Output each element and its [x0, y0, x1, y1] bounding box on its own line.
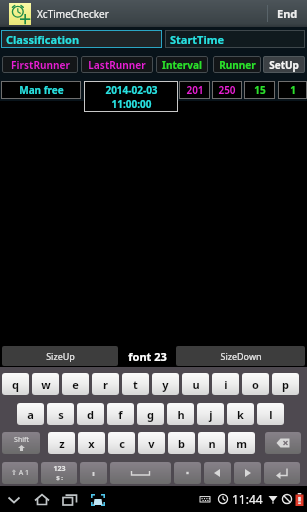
staticText: q: [12, 377, 19, 392]
staticText: Man free: [19, 83, 64, 97]
staticText: 1: [290, 83, 296, 97]
button[interactable]: Space: [110, 462, 171, 484]
staticText: $ :: [56, 474, 63, 482]
button[interactable]: d: [77, 403, 104, 425]
button[interactable]: Enter: [264, 462, 300, 484]
staticText: e: [72, 377, 79, 392]
button[interactable]: Back: [0, 486, 28, 512]
staticText: 15: [254, 83, 266, 97]
button[interactable]: StartTime: [165, 30, 305, 48]
button[interactable]: s: [47, 403, 74, 425]
staticText: t: [133, 377, 138, 392]
staticText: 250: [218, 83, 236, 97]
staticText: d: [87, 407, 94, 422]
staticText: x: [88, 436, 95, 451]
staticText: i: [224, 377, 228, 392]
button[interactable]: 2014-02-03 11:00:00: [84, 81, 178, 112]
button[interactable]: e: [62, 373, 89, 395]
staticText: c: [119, 436, 125, 451]
button[interactable]: Period: [174, 462, 201, 484]
button[interactable]: Switch input method: [84, 486, 112, 512]
button[interactable]: z: [48, 432, 75, 454]
button[interactable]: l: [257, 403, 284, 425]
button[interactable]: p: [272, 373, 299, 395]
staticText: SizeUp: [46, 350, 75, 362]
button[interactable]: Symbols: [2, 462, 38, 484]
staticText: p: [282, 377, 289, 392]
button[interactable]: Comma: [80, 462, 107, 484]
staticText: Interval: [162, 58, 202, 72]
staticText: w: [41, 377, 51, 392]
staticText: k: [237, 407, 244, 422]
button[interactable]: m: [228, 432, 255, 454]
staticText: LastRunner: [88, 58, 146, 72]
staticText: g: [147, 407, 154, 422]
button[interactable]: q: [2, 373, 29, 395]
button[interactable]: Home: [28, 486, 56, 512]
button[interactable]: k: [227, 403, 254, 425]
button[interactable]: y: [152, 373, 179, 395]
button[interactable]: 15: [244, 81, 275, 99]
staticText: End: [277, 6, 298, 21]
staticText: f: [118, 407, 123, 422]
button[interactable]: Numbers: [41, 462, 77, 484]
staticText: h: [177, 407, 185, 422]
button[interactable]: b: [168, 432, 195, 454]
button[interactable]: i: [212, 373, 239, 395]
staticText: r: [103, 377, 108, 392]
button[interactable]: SizeDown: [176, 346, 305, 366]
button[interactable]: 250: [212, 81, 242, 99]
button[interactable]: 1: [278, 81, 307, 99]
staticText: b: [178, 436, 185, 451]
button[interactable]: o: [242, 373, 269, 395]
button[interactable]: t: [122, 373, 149, 395]
button[interactable]: u: [182, 373, 209, 395]
staticText: FirstRunner: [11, 58, 70, 72]
button[interactable]: FirstRunner: [2, 56, 78, 73]
button[interactable]: LastRunner: [81, 56, 153, 73]
staticText: SetUp: [269, 58, 299, 72]
staticText: Runner: [219, 58, 256, 72]
staticText: 123: [53, 464, 66, 474]
staticText: XcTimeChecker: [37, 7, 109, 21]
button[interactable]: v: [138, 432, 165, 454]
staticText: StartTime: [170, 32, 225, 47]
button[interactable]: Backspace: [265, 432, 301, 454]
staticText: y: [162, 377, 169, 392]
button[interactable]: c: [108, 432, 135, 454]
staticText: 11:44: [232, 491, 263, 507]
button[interactable]: n: [198, 432, 225, 454]
button[interactable]: h: [167, 403, 194, 425]
staticText: o: [252, 377, 259, 392]
button[interactable]: r: [92, 373, 119, 395]
button[interactable]: Left: [204, 462, 231, 484]
button[interactable]: SizeUp: [2, 346, 118, 366]
button[interactable]: w: [32, 373, 59, 395]
button[interactable]: Classification: [1, 30, 162, 48]
staticText: 201: [186, 83, 204, 97]
staticText: l: [269, 407, 273, 422]
button[interactable]: 201: [179, 81, 210, 99]
staticText: j: [209, 407, 213, 422]
button[interactable]: End: [268, 0, 307, 27]
staticText: Classification: [6, 32, 80, 47]
button[interactable]: Interval: [156, 56, 208, 73]
staticText: ⇧ A 1: [11, 468, 29, 478]
staticText: 2014-02-03 11:00:00: [105, 83, 158, 111]
staticText: a: [27, 407, 34, 422]
button[interactable]: Shift: [2, 432, 40, 454]
staticText: s: [58, 407, 64, 422]
staticText: z: [59, 436, 65, 451]
button[interactable]: f: [107, 403, 134, 425]
button[interactable]: j: [197, 403, 224, 425]
button[interactable]: g: [137, 403, 164, 425]
staticText: SizeDown: [220, 350, 262, 362]
button[interactable]: Runner: [213, 56, 261, 73]
button[interactable]: Recents: [56, 486, 84, 512]
button[interactable]: a: [17, 403, 44, 425]
button[interactable]: Man free: [1, 81, 81, 99]
staticText: u: [192, 377, 200, 392]
button[interactable]: SetUp: [263, 56, 305, 73]
button[interactable]: Right: [234, 462, 261, 484]
button[interactable]: x: [78, 432, 105, 454]
